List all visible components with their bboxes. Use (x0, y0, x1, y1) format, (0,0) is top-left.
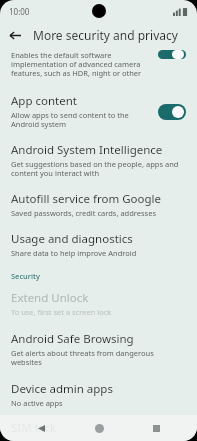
staticText: To use, first set a screen lock (11, 307, 112, 317)
button[interactable]: Toggle (158, 104, 186, 120)
staticText: App content (11, 93, 77, 109)
button[interactable]: Android Safe Browsing (0, 325, 197, 375)
button[interactable]: Home (90, 419, 108, 437)
button[interactable]: Recents (147, 419, 165, 437)
staticText: Device admin apps (11, 381, 113, 397)
button[interactable]: Usage and diagnostics (0, 225, 197, 265)
button[interactable]: Android System Intelligence (0, 136, 197, 185)
staticText: More security and privacy (33, 27, 178, 43)
staticText: Android System Intelligence (11, 142, 163, 158)
staticText: Usage and diagnostics (11, 231, 133, 247)
staticText: Enables the default software implementat… (11, 50, 150, 79)
button[interactable]: Enables the default software implementat… (0, 48, 197, 79)
staticText: Get alerts about threats from dangerous … (11, 348, 186, 368)
button[interactable]: SIM lock (0, 416, 197, 441)
staticText: Security (11, 271, 40, 281)
button[interactable]: Extend Unlock (0, 286, 197, 325)
staticText: Saved passwords, credit cards, addresses (11, 208, 156, 218)
button[interactable]: Back (32, 419, 50, 437)
button[interactable]: Back (5, 25, 25, 45)
staticText: No active apps (11, 398, 63, 408)
staticText: Get suggestions based on the people, app… (11, 159, 186, 179)
staticText: Allow apps to send content to the Androi… (11, 110, 150, 130)
staticText: Share data to help improve Android (11, 248, 137, 258)
staticText: SIM lock (11, 420, 57, 432)
staticText: Autofill service from Google (11, 191, 161, 207)
staticText: 10:00 (9, 6, 30, 17)
button[interactable]: App content (0, 89, 197, 136)
staticText: Android Safe Browsing (11, 331, 134, 347)
staticText: Extend Unlock (11, 290, 89, 306)
button[interactable]: Device admin apps (0, 375, 197, 416)
button[interactable]: Autofill service from Google (0, 185, 197, 225)
button[interactable]: Toggle (158, 50, 186, 59)
